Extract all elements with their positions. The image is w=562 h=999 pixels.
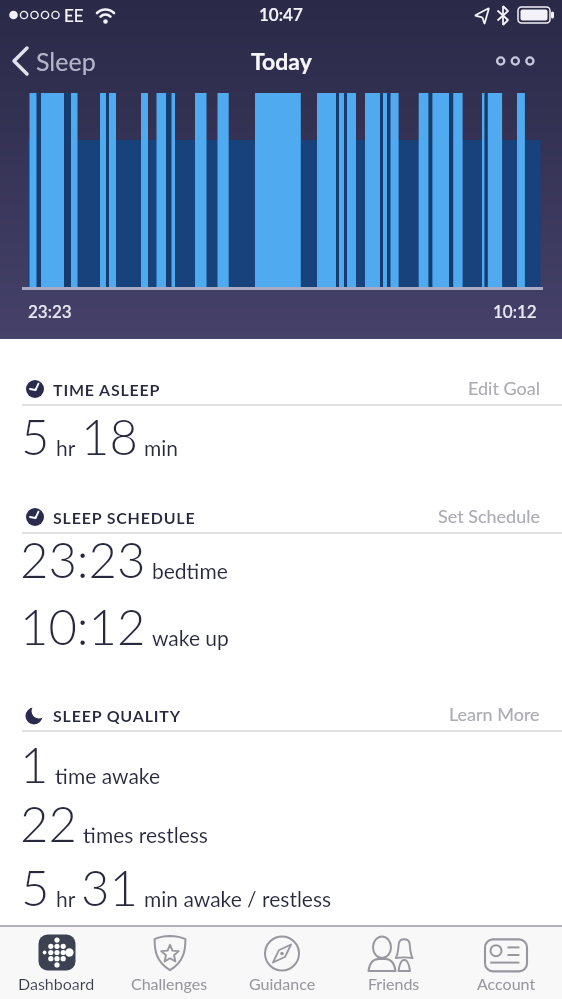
staticText: 31 [81, 858, 138, 917]
staticText: EE [64, 5, 84, 25]
staticText: 22 [20, 794, 77, 853]
staticText: bedtime [152, 558, 228, 583]
staticText: 10:12 [493, 301, 537, 321]
staticText: Learn More [449, 703, 540, 725]
staticText: Dashboard [18, 974, 95, 993]
staticText: hr [56, 886, 76, 911]
staticText: 5 [21, 858, 50, 917]
button[interactable]: Learn More [449, 703, 540, 725]
staticText: 10:12 [20, 597, 146, 656]
button[interactable]: Dashboard [0, 927, 113, 999]
button[interactable]: Friends [338, 927, 450, 999]
button[interactable]: Edit Goal [468, 377, 540, 399]
staticText: 5 [21, 407, 50, 466]
staticText: hr [56, 435, 76, 460]
button[interactable]: Set Schedule [438, 505, 540, 527]
staticText: TIME ASLEEP [53, 380, 161, 399]
staticText: wake up [152, 625, 229, 650]
staticText: SLEEP QUALITY [53, 706, 181, 725]
staticText: Today [251, 47, 312, 75]
staticText: Account [477, 974, 536, 993]
staticText: 23:23 [28, 301, 72, 321]
button[interactable]: Guidance [226, 927, 338, 999]
button[interactable]: Sleep [10, 46, 96, 76]
button[interactable]: Challenges [113, 927, 226, 999]
staticText: min awake / restless [144, 886, 332, 911]
staticText: SLEEP SCHEDULE [53, 508, 196, 527]
staticText: Guidance [249, 974, 316, 993]
staticText: Set Schedule [438, 505, 540, 527]
staticText: 23:23 [20, 530, 146, 589]
staticText: 10:47 [259, 4, 303, 24]
staticText: min [144, 435, 179, 460]
staticText: 18 [81, 407, 138, 466]
button[interactable] [496, 55, 538, 67]
staticText: Sleep [36, 46, 96, 76]
staticText: times restless [83, 822, 208, 847]
staticText: Edit Goal [468, 377, 540, 399]
staticText: time awake [55, 763, 161, 788]
staticText: Friends [368, 974, 420, 993]
button[interactable]: Account [450, 927, 562, 999]
staticText: Challenges [131, 974, 208, 993]
staticText: 1 [20, 735, 49, 794]
